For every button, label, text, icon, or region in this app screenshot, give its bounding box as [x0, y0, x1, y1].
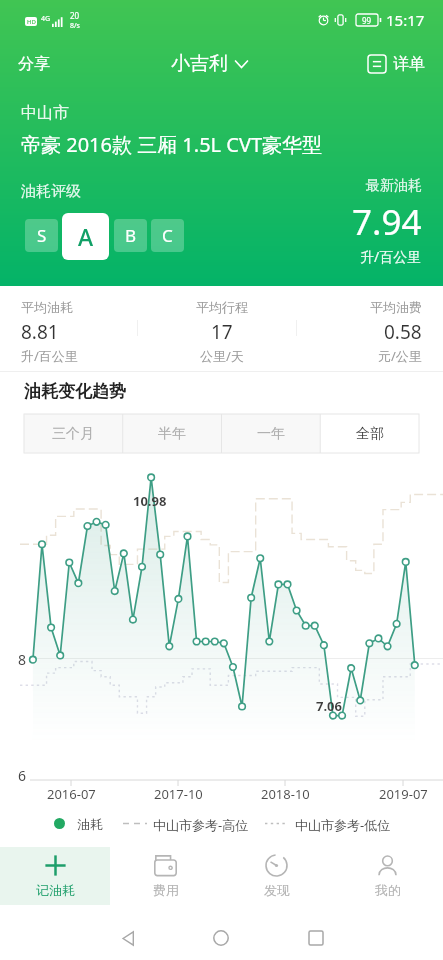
staticText: S — [37, 224, 47, 247]
staticText: 三个月 — [52, 425, 94, 443]
staticText: 全部 — [356, 425, 384, 443]
staticText: 升/百公里 — [360, 247, 422, 266]
staticText: 小吉利 — [171, 52, 228, 76]
button[interactable]: 分享 — [0, 44, 64, 84]
staticText: 帝豪 2016款 三厢 1.5L CVT豪华型 — [21, 131, 323, 158]
staticText: 中山市 — [21, 103, 69, 123]
staticText: 发现 — [264, 882, 290, 898]
staticText: 最新油耗 — [366, 177, 422, 195]
button[interactable]: B — [114, 219, 147, 252]
staticText: 我的 — [375, 882, 401, 898]
staticText: 4G — [41, 14, 51, 24]
button[interactable]: Home — [201, 918, 241, 958]
button[interactable]: 详单 — [356, 46, 443, 82]
staticText: 2019-07 — [379, 785, 428, 803]
staticText: 7.94 — [352, 198, 422, 246]
staticText: A — [78, 221, 94, 252]
staticText: 2018-10 — [261, 785, 310, 803]
button[interactable]: 半年 — [122, 414, 221, 453]
button[interactable]: 记油耗 — [0, 847, 110, 905]
staticText: 一年 — [257, 425, 285, 443]
staticText: 平均油耗 — [21, 299, 73, 315]
staticText: 8 — [18, 650, 27, 669]
staticText: 8.81 — [21, 319, 59, 345]
staticText: 升/百公里 — [21, 347, 78, 365]
staticText: 中山市参考-高位 — [153, 816, 249, 834]
button[interactable]: 全部 — [320, 414, 419, 453]
staticText: 油耗评级 — [21, 182, 81, 201]
staticText: 17 — [211, 319, 233, 345]
staticText: 元/公里 — [378, 347, 422, 365]
staticText: 公里/天 — [200, 347, 244, 365]
button[interactable]: 我的 — [332, 847, 443, 905]
staticText: 15:17 — [386, 10, 425, 30]
staticText: C — [162, 224, 173, 247]
button[interactable]: 一年 — [221, 414, 320, 453]
button[interactable]: S — [25, 219, 58, 252]
staticText: 2016-07 — [47, 785, 96, 803]
staticText: HD — [27, 18, 36, 26]
staticText: 平均油费 — [370, 299, 422, 315]
staticText: 6 — [18, 766, 27, 785]
staticText: 10.98 — [133, 492, 167, 510]
staticText: 7.06 — [316, 697, 342, 715]
staticText: 分享 — [18, 54, 50, 74]
staticText: 油耗 — [77, 816, 103, 832]
staticText: 详单 — [393, 54, 425, 74]
staticText: 油耗变化趋势 — [24, 381, 126, 402]
button[interactable]: 发现 — [221, 847, 332, 905]
staticText: 0.58 — [384, 319, 422, 345]
staticText: 8/s — [70, 21, 80, 31]
button[interactable]: 费用 — [110, 847, 221, 905]
staticText: 半年 — [158, 425, 186, 443]
staticText: 2017-10 — [154, 785, 203, 803]
staticText: 平均行程 — [196, 299, 248, 315]
button[interactable]: 三个月 — [24, 414, 122, 453]
staticText: 中山市参考-低位 — [295, 816, 391, 834]
button[interactable]: 小吉利 — [163, 46, 256, 82]
button[interactable]: Recents — [296, 918, 336, 958]
staticText: B — [125, 224, 137, 247]
button[interactable]: Back — [108, 918, 148, 958]
staticText: 记油耗 — [36, 882, 75, 898]
staticText: 费用 — [153, 882, 179, 898]
button[interactable]: A — [62, 213, 109, 260]
staticText: 20 — [70, 10, 80, 21]
staticText: 99 — [362, 15, 372, 26]
button[interactable]: C — [151, 219, 184, 252]
